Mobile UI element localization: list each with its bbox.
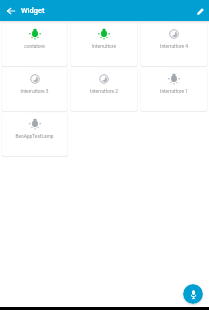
button[interactable]: Back	[4, 4, 18, 18]
staticText: Interruttore 3	[2, 89, 67, 95]
staticText: Interruttore 2	[71, 89, 137, 95]
staticText: Interruttore 1	[141, 89, 207, 95]
button[interactable]: Interruttore 3	[2, 68, 67, 111]
button[interactable]: Interruttore	[71, 23, 137, 66]
staticText: Widget	[21, 6, 45, 15]
button[interactable]: BeoAppTestLamp	[2, 113, 67, 156]
button[interactable]: Edit	[193, 4, 207, 18]
button[interactable]: Interruttore 1	[141, 68, 207, 111]
staticText: BeoAppTestLamp	[2, 134, 67, 140]
button[interactable]: Voice input	[183, 284, 203, 304]
button[interactable]: Interruttore 2	[71, 68, 137, 111]
staticText: contatore	[2, 44, 67, 50]
button[interactable]: contatore	[2, 23, 67, 66]
staticText: Interruttore 4	[141, 44, 207, 50]
button[interactable]: Interruttore 4	[141, 23, 207, 66]
staticText: Interruttore	[71, 44, 137, 50]
